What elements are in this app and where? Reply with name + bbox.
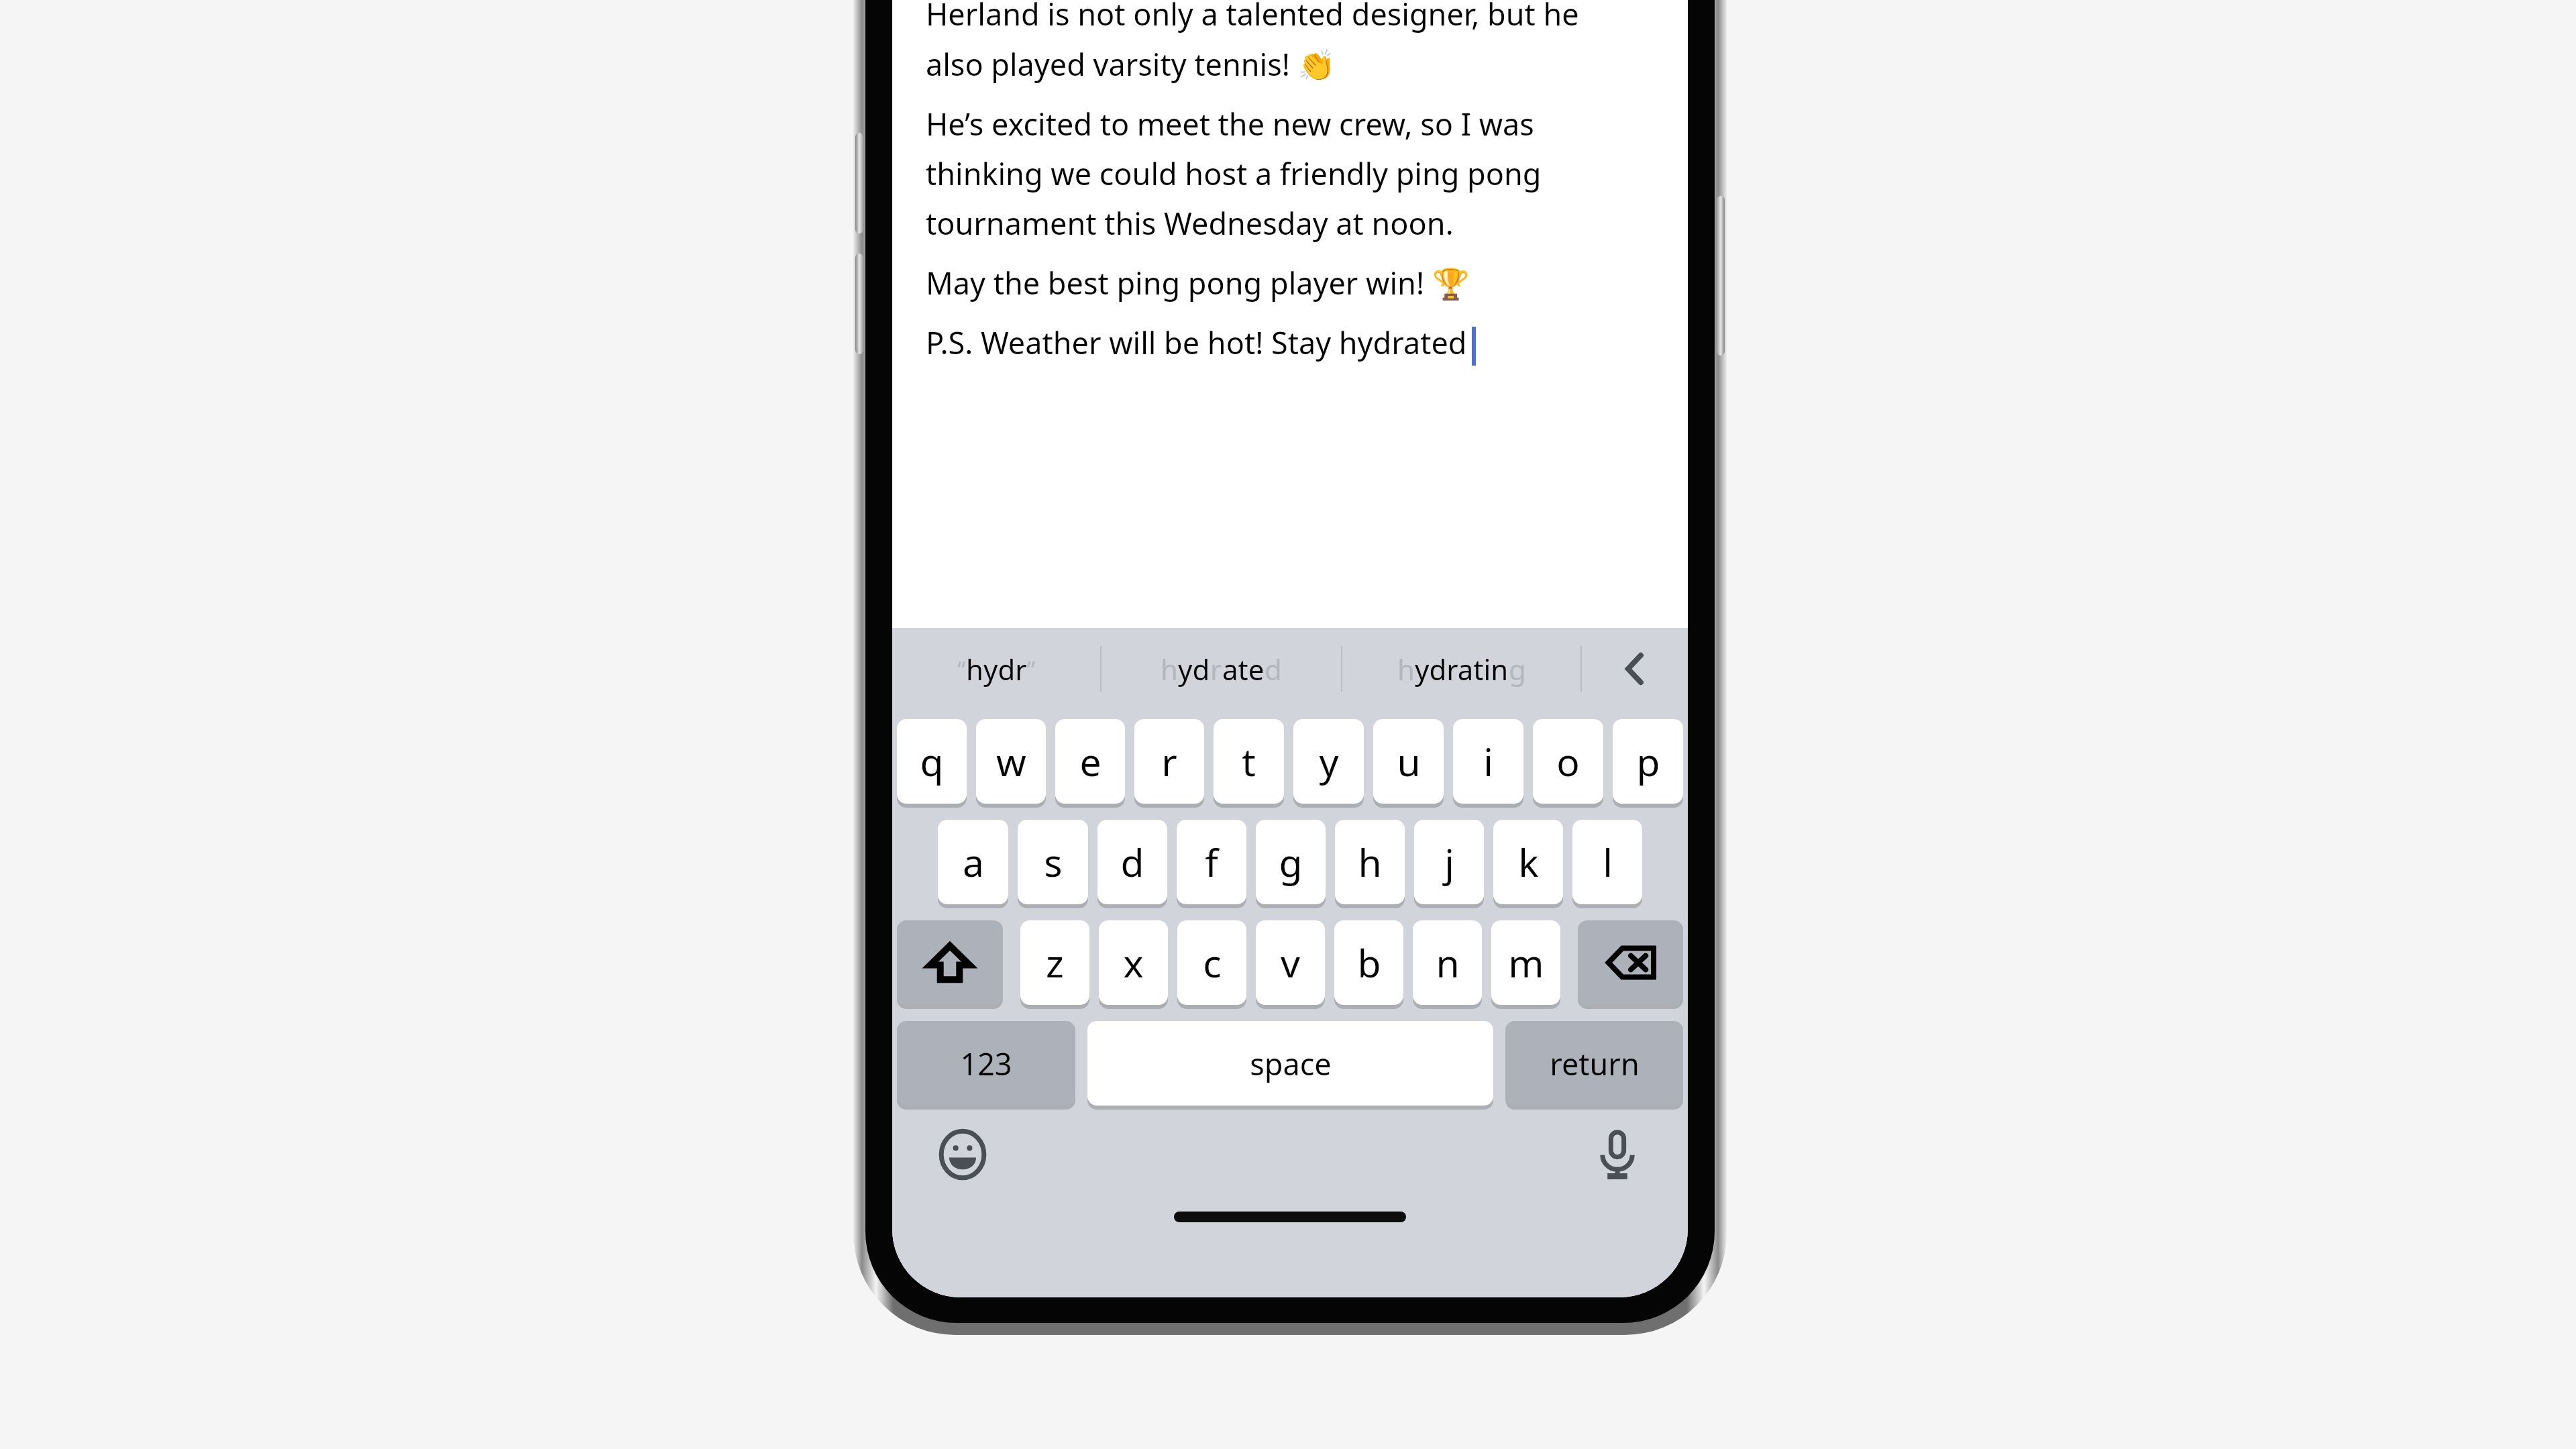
button[interactable]: j xyxy=(1414,820,1484,904)
button[interactable]: f xyxy=(1177,820,1246,904)
button[interactable]: “ xyxy=(892,628,1100,710)
button[interactable]: a xyxy=(938,820,1008,904)
button[interactable]: i xyxy=(1453,719,1523,804)
staticText: t xyxy=(1242,735,1256,788)
staticText: o xyxy=(1556,735,1580,788)
staticText: space xyxy=(1250,1043,1332,1084)
button[interactable]: c xyxy=(1177,920,1246,1005)
staticText: May the best ping pong player win! 🏆 xyxy=(926,262,1470,303)
button[interactable]: k xyxy=(1493,820,1563,904)
button[interactable]: z xyxy=(1020,920,1089,1005)
button[interactable]: 123 xyxy=(897,1021,1075,1106)
button[interactable]: e xyxy=(1055,719,1125,804)
staticText: d xyxy=(1265,650,1282,688)
staticText: He’s excited to meet the new crew, so I … xyxy=(926,103,1542,244)
button[interactable]: h xyxy=(1335,820,1405,904)
button[interactable]: g xyxy=(1256,820,1326,904)
staticText: f xyxy=(1205,836,1218,888)
staticText: e xyxy=(1079,735,1102,788)
staticText: g xyxy=(1509,650,1526,688)
button[interactable]: Volume down xyxy=(855,254,863,354)
staticText: b xyxy=(1357,936,1381,989)
button[interactable]: Backspace xyxy=(1578,920,1683,1005)
button[interactable]: s xyxy=(1018,820,1088,904)
button[interactable]: m xyxy=(1491,920,1560,1005)
staticText: y xyxy=(1319,735,1339,788)
staticText: z xyxy=(1046,936,1064,989)
staticText: s xyxy=(1044,836,1063,888)
button[interactable]: Dictation xyxy=(1585,1122,1650,1187)
button[interactable]: Previous suggestions xyxy=(1582,628,1688,710)
button[interactable]: w xyxy=(976,719,1046,804)
button[interactable]: l xyxy=(1572,820,1642,904)
staticText: p xyxy=(1636,735,1660,788)
button[interactable]: o xyxy=(1533,719,1603,804)
button[interactable]: Emoji keyboard xyxy=(930,1122,996,1187)
staticText: ” xyxy=(1027,654,1036,685)
button[interactable]: Volume up xyxy=(855,133,863,233)
staticText: 123 xyxy=(960,1043,1012,1084)
button[interactable]: Side button xyxy=(1717,196,1725,356)
staticText: ydratin xyxy=(1415,650,1509,688)
button[interactable]: n xyxy=(1413,920,1482,1005)
staticText: k xyxy=(1518,836,1539,888)
button[interactable]: u xyxy=(1373,719,1444,804)
staticText: hydr xyxy=(966,650,1027,688)
staticText: m xyxy=(1508,936,1544,989)
staticText: n xyxy=(1436,936,1460,989)
staticText: “ xyxy=(957,654,966,685)
staticText: i xyxy=(1483,735,1493,788)
staticText: x xyxy=(1123,936,1144,989)
staticText: l xyxy=(1603,836,1613,888)
staticText: P.S. Weather will be hot! Stay hydrated xyxy=(926,322,1467,363)
button[interactable]: p xyxy=(1613,719,1683,804)
staticText: q xyxy=(920,735,944,788)
staticText: c xyxy=(1203,936,1222,989)
staticText: g xyxy=(1279,836,1303,888)
staticText: r xyxy=(1210,650,1222,688)
button[interactable]: h xyxy=(1102,628,1341,710)
staticText: r xyxy=(1161,735,1177,788)
staticText: h xyxy=(1358,836,1382,888)
button[interactable]: q xyxy=(897,719,967,804)
staticText: ate xyxy=(1222,650,1265,688)
button[interactable]: h xyxy=(1342,628,1580,710)
staticText: u xyxy=(1397,735,1421,788)
button[interactable]: x xyxy=(1099,920,1168,1005)
staticText: j xyxy=(1444,836,1454,888)
staticText: Herland is not only a talented designer,… xyxy=(926,0,1579,85)
button[interactable]: t xyxy=(1214,719,1284,804)
button[interactable]: y xyxy=(1293,719,1364,804)
button[interactable]: v xyxy=(1256,920,1325,1005)
staticText: w xyxy=(996,735,1026,788)
staticText: a xyxy=(963,836,984,888)
button[interactable]: space xyxy=(1087,1021,1493,1106)
button[interactable]: Shift xyxy=(897,920,1003,1005)
button[interactable]: d xyxy=(1097,820,1167,904)
button[interactable]: b xyxy=(1334,920,1403,1005)
staticText: return xyxy=(1550,1043,1640,1084)
staticText: d xyxy=(1120,836,1144,888)
staticText: h xyxy=(1161,650,1178,688)
staticText: v xyxy=(1281,936,1300,989)
staticText: yd xyxy=(1178,650,1210,688)
button[interactable]: return xyxy=(1505,1021,1683,1106)
staticText: h xyxy=(1397,650,1415,688)
button[interactable]: r xyxy=(1134,719,1204,804)
